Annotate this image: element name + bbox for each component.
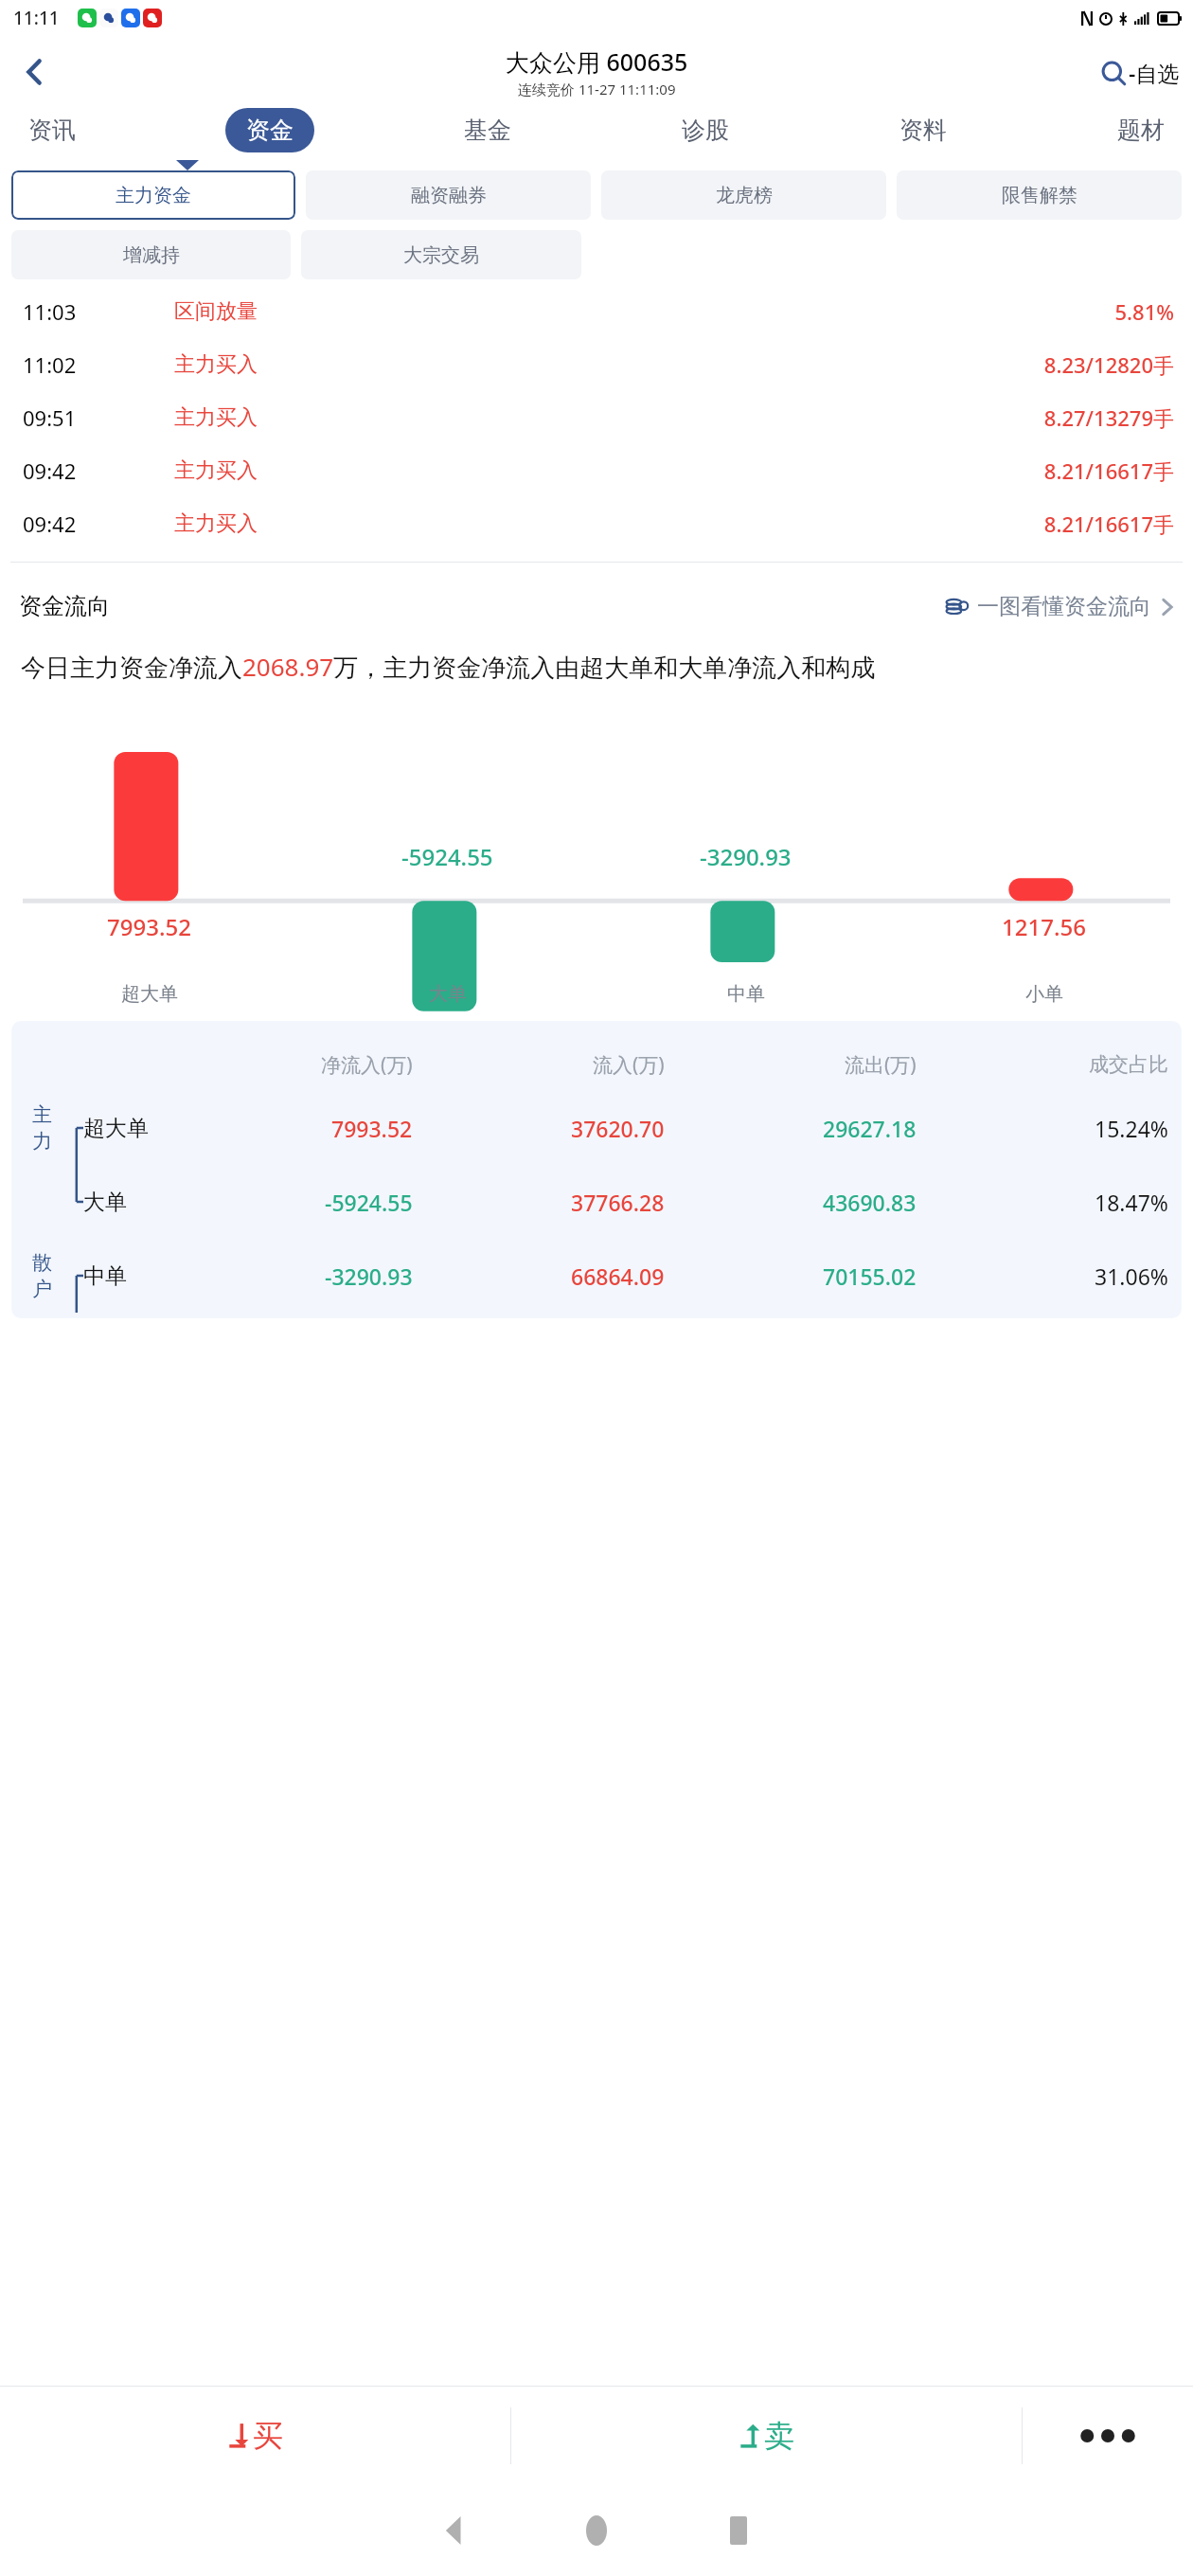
button[interactable]: 09:42: [0, 444, 1193, 497]
button[interactable]: Back: [9, 47, 59, 97]
staticText: 43690.83: [823, 1188, 917, 1217]
staticText: 净流入(万): [321, 1051, 413, 1079]
button[interactable]: 09:51: [0, 391, 1193, 444]
staticText: 龙虎榜: [716, 184, 773, 207]
staticText: 09:42: [23, 456, 174, 485]
staticText: -自选: [1129, 58, 1180, 87]
staticText: 中单: [83, 1262, 161, 1290]
button[interactable]: 诊股: [661, 108, 750, 152]
staticText: 11:03: [23, 297, 174, 326]
button[interactable]: More options: [1023, 2387, 1193, 2485]
staticText: 主力买入: [174, 457, 890, 484]
staticText: 主力买入: [174, 351, 890, 378]
staticText: 37620.70: [571, 1114, 665, 1143]
staticText: 主力: [32, 1102, 55, 1154]
staticText: 大单: [429, 982, 467, 1006]
button[interactable]: 资讯: [8, 108, 97, 152]
button[interactable]: 09:42: [0, 497, 1193, 550]
button[interactable]: Fund flow chart: [945, 593, 1174, 620]
staticText: 主力买入: [174, 404, 890, 431]
staticText: 8.27/13279手: [890, 403, 1174, 432]
button[interactable]: 增减持: [11, 230, 291, 279]
staticText: 卖: [764, 2417, 794, 2455]
staticText: -3290.93: [700, 841, 792, 872]
staticText: 大单: [83, 1189, 161, 1216]
button[interactable]: 买: [0, 2387, 510, 2485]
staticText: 7993.52: [331, 1114, 413, 1143]
staticText: 15.24%: [1095, 1114, 1168, 1143]
staticText: 区间放量: [174, 298, 890, 325]
staticText: 70155.02: [823, 1261, 917, 1291]
staticText: 超大单: [83, 1115, 161, 1142]
staticText: 超大单: [121, 982, 178, 1006]
button[interactable]: Recent apps: [668, 2485, 810, 2576]
staticText: 诊股: [682, 116, 729, 145]
staticText: 连续竞价 11-27 11:11:09: [518, 80, 676, 98]
staticText: 买: [253, 2417, 283, 2455]
button[interactable]: Home: [525, 2485, 668, 2576]
staticText: 7993.52: [107, 911, 191, 942]
button[interactable]: 限售解禁: [897, 170, 1182, 220]
staticText: -5924.55: [401, 841, 493, 872]
staticText: 29627.18: [823, 1114, 917, 1143]
staticText: 一图看懂资金流向: [977, 593, 1151, 620]
staticText: 主力买入: [174, 510, 890, 537]
staticText: 限售解禁: [1002, 184, 1077, 207]
staticText: 主力资金: [116, 184, 191, 207]
button[interactable]: 资料: [879, 108, 968, 152]
button[interactable]: 大宗交易: [301, 230, 581, 279]
staticText: 资金流向: [19, 592, 110, 620]
staticText: 11:11: [13, 6, 60, 30]
staticText: 题材: [1117, 116, 1165, 145]
button[interactable]: 主力资金: [11, 170, 295, 220]
button[interactable]: 卖: [511, 2387, 1022, 2485]
staticText: 37766.28: [571, 1188, 665, 1217]
staticText: 中单: [727, 982, 765, 1006]
button[interactable]: 11:02: [0, 338, 1193, 391]
staticText: 资料: [899, 116, 947, 145]
staticText: 散户: [32, 1250, 55, 1301]
staticText: 8.23/12820手: [890, 350, 1174, 379]
staticText: 31.06%: [1095, 1261, 1168, 1291]
staticText: 成交占比: [1089, 1052, 1168, 1077]
button[interactable]: 11:03: [0, 285, 1193, 338]
staticText: 5.81%: [890, 297, 1174, 326]
staticText: 8.21/16617手: [890, 510, 1174, 538]
staticText: 流入(万): [593, 1051, 665, 1079]
staticText: 18.47%: [1095, 1188, 1168, 1217]
button[interactable]: 基金: [443, 108, 532, 152]
staticText: 09:51: [23, 403, 174, 432]
staticText: 1217.56: [1002, 911, 1086, 942]
staticText: 09:42: [23, 510, 174, 538]
staticText: 融资融券: [411, 184, 487, 207]
staticText: 小单: [1025, 982, 1063, 1006]
staticText: 66864.09: [571, 1261, 665, 1291]
other: Fund flow chart: [945, 595, 970, 619]
staticText: 8.21/16617手: [890, 456, 1174, 485]
button[interactable]: Back: [383, 2485, 525, 2576]
staticText: 流出(万): [845, 1051, 917, 1079]
button[interactable]: 融资融券: [306, 170, 591, 220]
button[interactable]: 龙虎榜: [601, 170, 886, 220]
staticText: -5924.55: [325, 1188, 413, 1217]
staticText: 资讯: [28, 116, 76, 145]
staticText: 增减持: [123, 243, 180, 267]
staticText: 11:02: [23, 350, 174, 379]
button[interactable]: 资金: [225, 108, 314, 152]
staticText: 基金: [464, 116, 511, 145]
other: Search: [1100, 60, 1127, 86]
button[interactable]: Search: [1100, 58, 1180, 87]
staticText: 大宗交易: [403, 243, 479, 267]
button[interactable]: 题材: [1096, 108, 1185, 152]
staticText: 大众公用 600635: [506, 45, 688, 78]
staticText: 资金: [246, 116, 294, 145]
staticText: -3290.93: [325, 1261, 413, 1291]
staticText: 今日主力资金净流入2068.97万，主力资金净流入由超大单和大单净流入和构成: [21, 650, 1172, 684]
